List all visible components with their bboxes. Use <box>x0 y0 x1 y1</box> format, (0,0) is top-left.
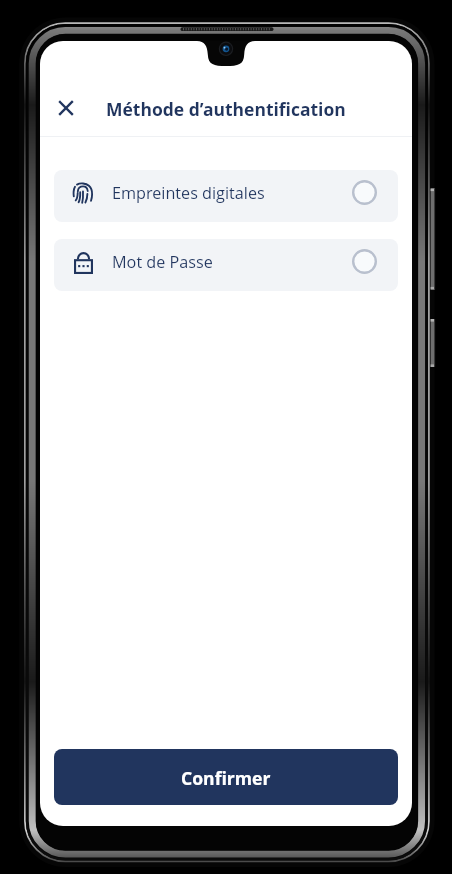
button[interactable]: Mot de Passe <box>54 239 398 291</box>
staticText: Empreintes digitales <box>112 182 265 204</box>
staticText: Méthode d’authentification <box>106 97 346 121</box>
button[interactable]: Empreintes digitales <box>54 170 398 222</box>
staticText: Mot de Passe <box>112 251 213 273</box>
button[interactable]: Confirmer <box>54 749 398 805</box>
staticText: Confirmer <box>181 766 271 790</box>
button[interactable]: Close <box>44 86 88 130</box>
